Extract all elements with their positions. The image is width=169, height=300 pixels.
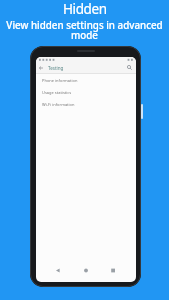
button[interactable]: Wi-Fi information bbox=[36, 98, 136, 110]
staticText: Usage statistics bbox=[42, 90, 72, 95]
button[interactable]: Testing bbox=[36, 62, 136, 73]
staticText: Testing bbox=[48, 65, 64, 71]
staticText: Phone information bbox=[42, 78, 78, 83]
staticText: View hidden settings in advanced mode bbox=[0, 19, 169, 42]
button[interactable]: Phone information bbox=[36, 74, 136, 86]
button[interactable]: Usage statistics bbox=[36, 86, 136, 98]
staticText: Hidden bbox=[63, 0, 107, 18]
staticText: Wi-Fi information bbox=[42, 102, 75, 107]
